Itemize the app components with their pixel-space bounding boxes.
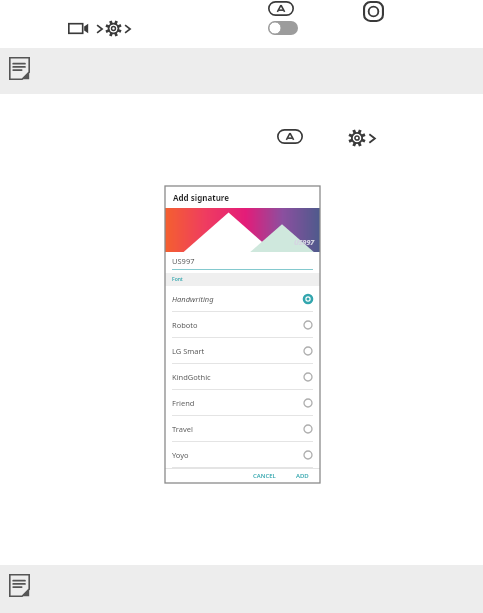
- button[interactable]: Toggle off: [268, 21, 298, 35]
- staticText: KindGothic: [172, 372, 211, 382]
- staticText: CANCEL: [253, 472, 276, 480]
- staticText: Font: [172, 276, 183, 283]
- button[interactable]: Handwriting: [165, 286, 320, 311]
- button[interactable]: Note: [0, 565, 483, 613]
- button[interactable]: Camera: [363, 1, 384, 22]
- staticText: Handwriting: [172, 294, 214, 304]
- button[interactable]: ADD: [292, 469, 313, 483]
- button[interactable]: KindGothic: [165, 364, 320, 389]
- staticText: US997: [172, 256, 195, 266]
- staticText: Yoyo: [172, 450, 189, 460]
- button[interactable]: Friend: [165, 390, 320, 415]
- staticText: US997: [294, 238, 315, 248]
- staticText: Friend: [172, 398, 195, 408]
- staticText: Travel: [172, 424, 193, 434]
- button[interactable]: Auto mode: [268, 1, 294, 16]
- button[interactable]: Travel: [165, 416, 320, 441]
- staticText: Roboto: [172, 320, 198, 330]
- staticText: Add signature: [173, 192, 230, 203]
- staticText: ADD: [296, 472, 309, 480]
- button[interactable]: Auto mode: [277, 129, 303, 144]
- button[interactable]: LG Smart: [165, 338, 320, 363]
- button[interactable]: Yoyo: [165, 442, 320, 467]
- staticText: LG Smart: [172, 346, 205, 356]
- button[interactable]: Camcorder then Settings: [68, 20, 133, 37]
- button[interactable]: Roboto: [165, 312, 320, 337]
- button[interactable]: Settings: [348, 129, 378, 147]
- button[interactable]: CANCEL: [249, 469, 280, 483]
- button[interactable]: Note: [0, 48, 483, 94]
